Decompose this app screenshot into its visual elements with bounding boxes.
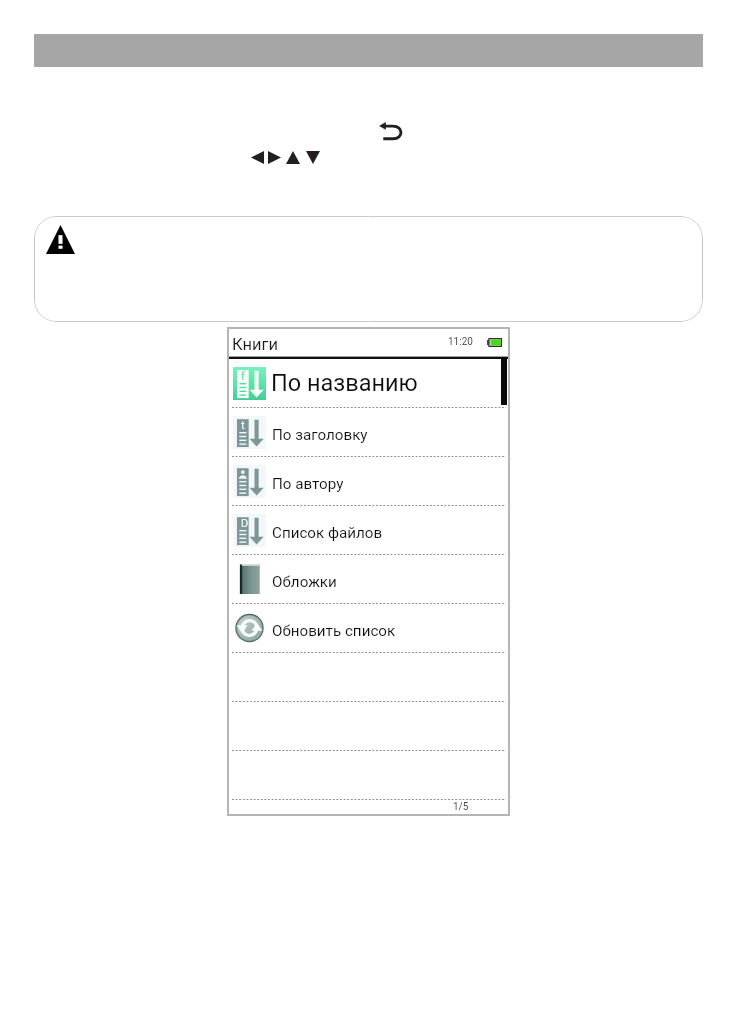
button[interactable]: Down	[306, 151, 320, 164]
staticText: t	[241, 419, 245, 432]
button[interactable]: f	[229, 359, 508, 407]
staticText: Обложки	[272, 573, 337, 591]
button[interactable]: D	[229, 506, 508, 554]
button[interactable]: Up	[286, 151, 300, 164]
staticText: По заголовку	[272, 426, 368, 444]
staticText: Список файлов	[272, 524, 383, 542]
staticText: Книги	[232, 335, 278, 354]
button[interactable]: По автору	[229, 457, 508, 505]
button[interactable]: Left	[251, 151, 264, 164]
button[interactable]: Back	[378, 121, 402, 142]
staticText: По названию	[271, 369, 418, 397]
button[interactable]: t	[229, 408, 508, 456]
staticText: По автору	[272, 475, 344, 493]
button[interactable]: Обложки	[229, 555, 508, 603]
staticText: 11:20	[448, 336, 473, 348]
staticText: D	[241, 517, 249, 530]
staticText: f	[241, 370, 245, 383]
button[interactable]: Right	[268, 151, 281, 164]
staticText: Обновить список	[272, 622, 396, 640]
button[interactable]: Обновить список	[229, 604, 508, 652]
staticText: 1/5	[453, 801, 469, 813]
